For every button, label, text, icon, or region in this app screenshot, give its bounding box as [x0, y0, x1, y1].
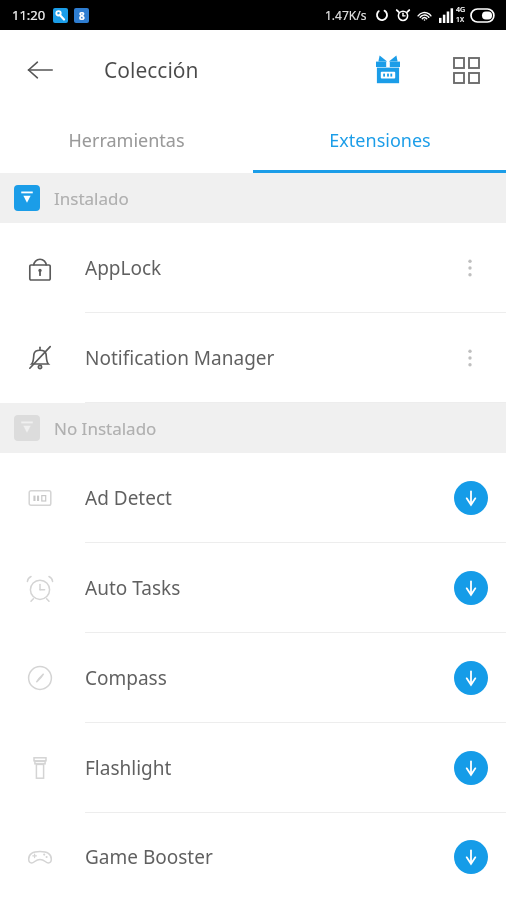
staticText: 11:20	[12, 6, 46, 24]
button[interactable]: Auto Tasks	[0, 543, 506, 633]
button[interactable]: Download Ad Detect	[454, 481, 488, 515]
staticText: Ad Detect	[85, 485, 172, 511]
button[interactable]: Flashlight	[0, 723, 506, 813]
staticText: Colección	[104, 56, 199, 85]
staticText: AppLock	[85, 255, 162, 281]
button[interactable]: Extensiones	[253, 110, 506, 170]
staticText: No Instalado	[54, 417, 157, 440]
button[interactable]: Ad Detect	[0, 453, 506, 543]
staticText: 4G	[456, 5, 466, 15]
button[interactable]: Download Game Booster	[454, 840, 488, 874]
button[interactable]: Gifts	[364, 46, 412, 94]
button[interactable]: Compass	[0, 633, 506, 723]
staticText: Instalado	[54, 187, 129, 210]
staticText: Compass	[85, 665, 167, 691]
button[interactable]: Download Auto Tasks	[454, 571, 488, 605]
staticText: Auto Tasks	[85, 575, 181, 601]
staticText: Flashlight	[85, 755, 172, 781]
button[interactable]: AppLock	[0, 223, 506, 313]
button[interactable]: Back	[16, 46, 64, 94]
button[interactable]: Game Booster	[0, 813, 506, 900]
staticText: Extensiones	[329, 128, 431, 153]
staticText: Game Booster	[85, 844, 213, 870]
button[interactable]: Notification Manager	[0, 313, 506, 403]
staticText: 1X	[456, 15, 465, 25]
button[interactable]: Grid view	[442, 46, 490, 94]
button[interactable]: Download Compass	[454, 661, 488, 695]
button[interactable]: More options	[448, 246, 492, 290]
staticText: Herramientas	[68, 128, 185, 153]
staticText: 8	[79, 9, 85, 23]
button[interactable]: Herramientas	[0, 110, 253, 170]
button[interactable]: Download Flashlight	[454, 751, 488, 785]
staticText: 1.47K/s	[325, 7, 367, 23]
staticText: Notification Manager	[85, 345, 275, 371]
button[interactable]: More options	[448, 336, 492, 380]
